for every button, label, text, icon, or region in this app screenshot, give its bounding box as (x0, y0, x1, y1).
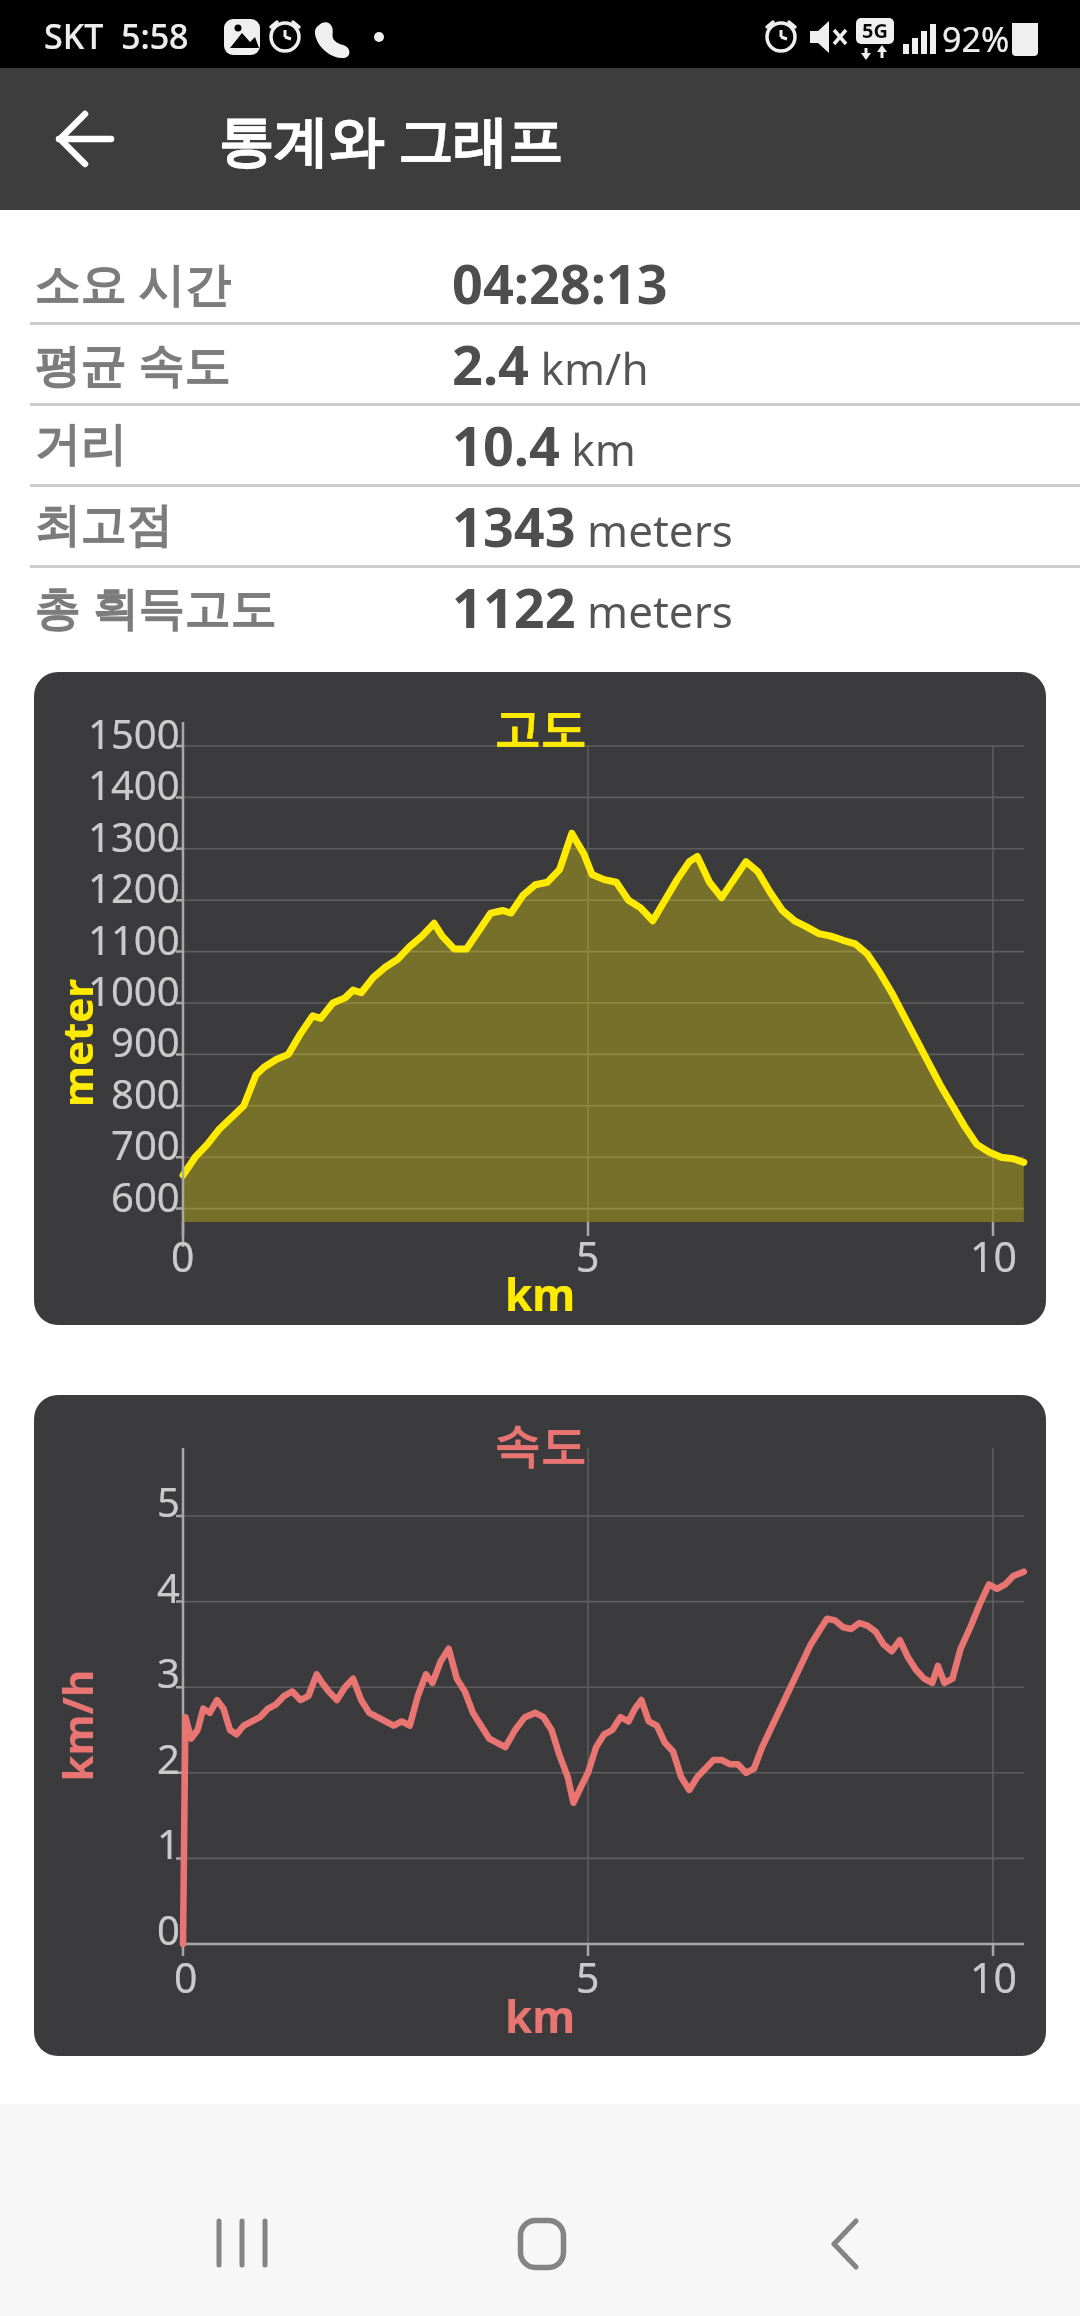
button[interactable]: 소요 시간 (0, 244, 1080, 322)
staticText: 총 획득고도 (34, 576, 276, 639)
staticText: 1 (157, 1816, 180, 1870)
staticText: 1122 meters (452, 570, 733, 644)
staticText: meter (48, 978, 105, 1107)
staticText: 1500 (88, 706, 180, 760)
staticText: 04:28:13 (452, 246, 668, 320)
button[interactable]: 총 획득고도 (0, 568, 1080, 646)
staticText: 0 (171, 1228, 195, 1284)
staticText: 1400 (88, 757, 180, 811)
staticText: 평균 속도 (34, 333, 230, 396)
staticText: 1343 meters (452, 489, 733, 563)
staticText: 2.4 km/h (452, 327, 649, 401)
staticText: 3 (157, 1645, 180, 1699)
staticText: 최고점 (34, 497, 172, 555)
staticText: 1200 (88, 860, 180, 914)
staticText: 4 (157, 1560, 180, 1614)
staticText: 5 (157, 1474, 180, 1528)
staticText: 10 (970, 1949, 1017, 2005)
button[interactable] (40, 93, 132, 185)
staticText: 속도 (494, 1418, 586, 1476)
staticText: km/h (47, 1669, 104, 1781)
button[interactable] (482, 2184, 602, 2304)
button[interactable] (182, 2184, 302, 2304)
staticText: 5G (862, 17, 888, 44)
button[interactable] (785, 2184, 905, 2304)
staticText: 5 (576, 1228, 600, 1284)
staticText: 0 (174, 1949, 198, 2005)
button[interactable]: 고도 (34, 672, 1046, 1325)
staticText: 5 (576, 1949, 600, 2005)
staticText: 고도 (494, 701, 586, 759)
button[interactable]: 평균 속도 (0, 325, 1080, 403)
staticText: 10.4 km (452, 408, 636, 482)
staticText: 900 (111, 1014, 180, 1068)
staticText: 700 (111, 1117, 180, 1171)
staticText: 800 (111, 1066, 180, 1120)
staticText: 2 (157, 1731, 180, 1785)
staticText: 92% (942, 16, 1010, 62)
staticText: 거리 (34, 416, 126, 474)
staticText: 0 (157, 1902, 180, 1956)
button[interactable]: 속도 (34, 1395, 1046, 2056)
staticText: 600 (111, 1169, 180, 1223)
staticText: km (505, 1986, 576, 2046)
button[interactable]: 거리 (0, 406, 1080, 484)
staticText: 소요 시간 (34, 252, 230, 315)
staticText: 1000 (88, 963, 180, 1017)
staticText: 통계와 그래프 (218, 102, 563, 177)
button[interactable]: 최고점 (0, 487, 1080, 565)
staticText: SKT 5:58 (44, 13, 189, 59)
staticText: km (505, 1264, 576, 1324)
staticText: 1100 (88, 912, 180, 966)
staticText: 10 (970, 1228, 1017, 1284)
staticText: 1300 (88, 809, 180, 863)
